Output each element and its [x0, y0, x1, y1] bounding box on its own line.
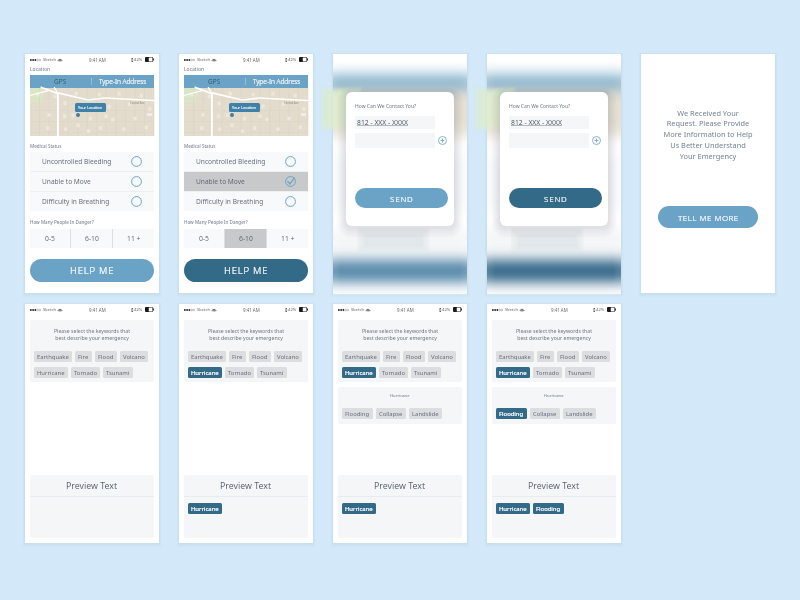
- button[interactable]: HELP ME: [184, 259, 308, 282]
- button[interactable]: Volcano: [120, 351, 148, 362]
- staticText: Tsunami: [568, 369, 592, 377]
- button[interactable]: Hurricane: [496, 367, 530, 378]
- button[interactable]: Hurricane: [34, 367, 68, 378]
- button[interactable]: Tornado: [379, 367, 408, 378]
- button[interactable]: Uncontrolled Bleeding: [30, 152, 154, 171]
- button[interactable]: Unable to Move: [184, 172, 308, 191]
- staticText: 42%: [596, 307, 605, 313]
- button[interactable]: 11 +: [267, 229, 308, 248]
- button[interactable]: Flooding: [533, 503, 564, 514]
- button[interactable]: 6-10: [225, 229, 266, 248]
- button[interactable]: SEND: [509, 188, 602, 208]
- button[interactable]: Tsunami: [103, 367, 133, 378]
- staticText: Sketch: [197, 57, 211, 63]
- button[interactable]: Uncontrolled Bleeding: [184, 152, 308, 171]
- button[interactable]: Fire: [75, 351, 92, 362]
- button[interactable]: GPS: [30, 75, 91, 88]
- staticText: Location: [184, 66, 205, 73]
- button[interactable]: 11 +: [113, 229, 154, 248]
- staticText: Sketch: [351, 307, 365, 313]
- staticText: Please select the keywords that best des…: [338, 327, 462, 341]
- staticText: Hurricane: [544, 393, 564, 399]
- staticText: Volcano: [123, 353, 145, 361]
- staticText: Medical Status: [30, 143, 62, 149]
- button[interactable]: Flooding: [342, 408, 373, 419]
- staticText: 0-5: [199, 234, 209, 243]
- button[interactable]: Tsunami: [257, 367, 287, 378]
- button[interactable]: Landslide: [563, 408, 596, 419]
- staticText: Your Location: [78, 105, 103, 110]
- staticText: 812 - XXX - XXXX: [511, 118, 562, 127]
- button[interactable]: 0-5: [184, 229, 224, 248]
- staticText: Please select the keywords that best des…: [30, 327, 154, 341]
- staticText: Fire: [386, 353, 397, 361]
- button[interactable]: Add another number: [437, 135, 448, 146]
- button[interactable]: Collapse: [376, 408, 406, 419]
- staticText: Landslide: [412, 410, 439, 418]
- staticText: Flood: [252, 353, 268, 361]
- button[interactable]: Unable to Move: [30, 172, 154, 191]
- staticText: Hurricane: [345, 505, 373, 513]
- button[interactable]: Hurricane: [188, 367, 222, 378]
- button[interactable]: Tornado: [225, 367, 254, 378]
- staticText: 9:41 AM: [397, 307, 414, 313]
- button[interactable]: Collapse: [530, 408, 560, 419]
- button[interactable]: Fire: [229, 351, 246, 362]
- button[interactable]: Tsunami: [411, 367, 441, 378]
- button[interactable]: Difficulty in Breathing: [30, 192, 154, 211]
- staticText: 11 +: [127, 234, 141, 243]
- button[interactable]: Earthquake: [342, 351, 380, 362]
- staticText: Unable to Move: [196, 177, 245, 186]
- staticText: Tornado: [382, 369, 405, 377]
- staticText: We Received Your Request. Please Provide…: [653, 108, 763, 161]
- button[interactable]: Flood: [95, 351, 117, 362]
- button[interactable]: Volcano: [582, 351, 610, 362]
- button[interactable]: Add another number: [591, 135, 602, 146]
- button[interactable]: Fire: [537, 351, 554, 362]
- staticText: 11 +: [281, 234, 295, 243]
- button[interactable]: Earthquake: [496, 351, 534, 362]
- staticText: Volcano: [431, 353, 453, 361]
- button[interactable]: Difficulty in Breathing: [184, 192, 308, 211]
- staticText: Hurricane: [390, 393, 410, 399]
- staticText: Sketch: [43, 307, 57, 313]
- button[interactable]: TELL ME MORE: [658, 206, 758, 228]
- button[interactable]: Type-In Address: [92, 75, 154, 88]
- staticText: Flood: [98, 353, 114, 361]
- staticText: Flooding: [536, 505, 561, 513]
- button[interactable]: Hurricane: [342, 503, 376, 514]
- button[interactable]: Flood: [249, 351, 271, 362]
- button[interactable]: Hurricane: [188, 503, 222, 514]
- button[interactable]: Flooding: [496, 408, 527, 419]
- staticText: How Many People In Danger?: [30, 219, 94, 225]
- staticText: 9:41 AM: [243, 307, 260, 313]
- staticText: 42%: [288, 307, 297, 313]
- button[interactable]: Type-In Address: [246, 75, 308, 88]
- staticText: Tsunami: [414, 369, 438, 377]
- button[interactable]: Earthquake: [188, 351, 226, 362]
- button[interactable]: Volcano: [428, 351, 456, 362]
- button[interactable]: SEND: [355, 188, 448, 208]
- staticText: Preview Text: [374, 480, 426, 492]
- button[interactable]: Hurricane: [496, 503, 530, 514]
- button[interactable]: Earthquake: [34, 351, 72, 362]
- button[interactable]: Hurricane: [342, 367, 376, 378]
- button[interactable]: 6-10: [71, 229, 112, 248]
- button[interactable]: Tornado: [71, 367, 100, 378]
- button[interactable]: Flood: [403, 351, 425, 362]
- button[interactable]: Flood: [557, 351, 579, 362]
- staticText: Preview Text: [220, 480, 272, 492]
- staticText: Landslide: [566, 410, 593, 418]
- button[interactable]: Tsunami: [565, 367, 595, 378]
- button[interactable]: Volcano: [274, 351, 302, 362]
- button[interactable]: GPS: [184, 75, 245, 88]
- button[interactable]: HELP ME: [30, 259, 154, 282]
- staticText: Type-In Address: [253, 77, 301, 86]
- staticText: HELP ME: [70, 264, 115, 277]
- button[interactable]: Fire: [383, 351, 400, 362]
- button[interactable]: Landslide: [409, 408, 442, 419]
- staticText: How Can We Contact You?: [509, 103, 571, 110]
- button[interactable]: 0-5: [30, 229, 70, 248]
- staticText: Fire: [232, 353, 243, 361]
- button[interactable]: Tornado: [533, 367, 562, 378]
